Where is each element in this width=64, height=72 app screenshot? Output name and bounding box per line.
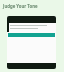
button[interactable] bbox=[7, 16, 56, 23]
staticText: Judge Your Tone bbox=[3, 3, 38, 9]
button[interactable] bbox=[7, 63, 56, 69]
